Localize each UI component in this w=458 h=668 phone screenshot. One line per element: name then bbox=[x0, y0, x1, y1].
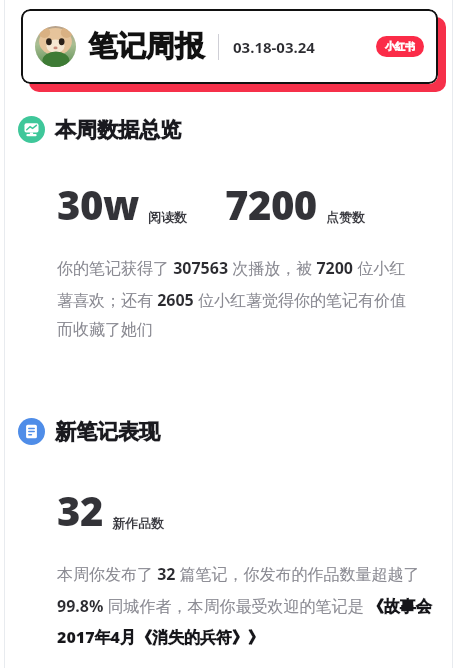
other: Data overview bbox=[18, 116, 45, 143]
staticText: 本周你发布了 32 篇笔记，你发布的作品数量超越了 99.8% 同城作者，本周你… bbox=[57, 563, 432, 647]
staticText: 小红书 bbox=[385, 40, 415, 53]
staticText: 7200 bbox=[225, 177, 317, 231]
staticText: 新作品数 bbox=[112, 515, 164, 531]
staticText: 你的笔记获得了 307563 次播放，被 7200 位小红薯喜欢；还有 2605… bbox=[57, 257, 418, 340]
other: New notes bbox=[18, 418, 45, 445]
button[interactable]: Avatar bbox=[21, 9, 438, 84]
staticText: 点赞数 bbox=[326, 209, 365, 225]
staticText: 30w bbox=[57, 177, 139, 231]
staticText: 新笔记表现 bbox=[55, 419, 160, 445]
staticText: 笔记周报 bbox=[88, 28, 204, 65]
other: Avatar bbox=[35, 26, 76, 67]
staticText: 03.18-03.24 bbox=[233, 37, 315, 57]
staticText: 本周数据总览 bbox=[55, 117, 181, 143]
button[interactable]: 小红书 bbox=[376, 36, 424, 57]
staticText: 32 bbox=[57, 483, 103, 537]
button[interactable]: Data overview bbox=[0, 116, 458, 143]
button[interactable]: New notes bbox=[0, 418, 458, 445]
staticText: 阅读数 bbox=[148, 209, 187, 225]
